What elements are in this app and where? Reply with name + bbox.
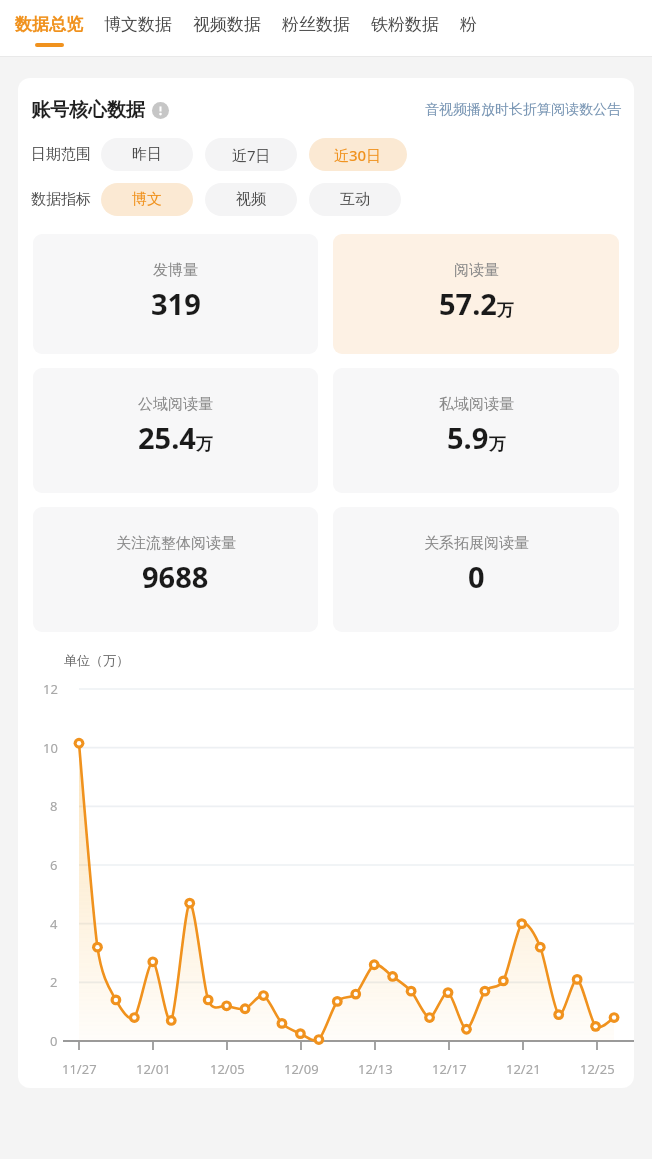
staticText: 音视频播放时长折算阅读数公告 <box>425 101 621 119</box>
button[interactable]: 关注流整体阅读量 <box>33 507 318 632</box>
button[interactable]: 发博量 <box>33 234 318 354</box>
button[interactable]: 视频数据 <box>193 0 261 56</box>
staticText: 关注流整体阅读量 <box>116 534 236 553</box>
button[interactable]: 关系拓展阅读量 <box>333 507 619 632</box>
staticText: 6 <box>50 856 58 874</box>
button[interactable]: 阅读量 <box>333 234 619 354</box>
staticText: 12/21 <box>506 1060 541 1078</box>
staticText: 公域阅读量 <box>138 395 213 414</box>
staticText: 12/09 <box>284 1060 319 1078</box>
staticText: 10 <box>43 739 58 757</box>
staticText: 12/13 <box>358 1060 393 1078</box>
button[interactable]: 近30日 <box>309 138 407 171</box>
staticText: 视频 <box>236 190 266 209</box>
staticText: 万 <box>489 434 506 455</box>
button[interactable]: 博文 <box>101 183 193 216</box>
staticText: 0 <box>468 557 485 596</box>
staticText: 视频数据 <box>193 14 261 35</box>
staticText: 博文数据 <box>104 14 172 35</box>
staticText: 57.2 <box>439 284 497 323</box>
staticText: 万 <box>497 300 514 321</box>
staticText: 发博量 <box>153 261 198 280</box>
staticText: 25.4 <box>138 418 196 457</box>
staticText: 昨日 <box>132 145 162 164</box>
staticText: 互动 <box>340 190 370 209</box>
button[interactable]: 说明 <box>151 101 169 119</box>
button[interactable]: 互动 <box>309 183 401 216</box>
staticText: 2 <box>50 973 58 991</box>
staticText: 4 <box>50 915 58 933</box>
button[interactable]: 博文数据 <box>104 0 172 56</box>
staticText: 9688 <box>142 557 209 596</box>
staticText: 铁粉数据 <box>371 14 439 35</box>
staticText: 319 <box>151 284 201 323</box>
button[interactable]: 视频 <box>205 183 297 216</box>
button[interactable]: 数据总览 <box>15 0 83 56</box>
button[interactable]: 粉 <box>460 0 477 56</box>
staticText: 近30日 <box>334 145 382 165</box>
button[interactable]: 粉丝数据 <box>282 0 350 56</box>
staticText: 12 <box>43 680 58 698</box>
button[interactable]: 私域阅读量 <box>333 368 619 493</box>
staticText: 12/25 <box>580 1060 615 1078</box>
staticText: 近7日 <box>232 145 271 165</box>
staticText: 私域阅读量 <box>439 395 514 414</box>
staticText: 12/05 <box>210 1060 245 1078</box>
staticText: 数据总览 <box>15 14 83 35</box>
staticText: 11/27 <box>62 1060 97 1078</box>
button[interactable]: 公域阅读量 <box>33 368 318 493</box>
staticText: 万 <box>196 434 213 455</box>
staticText: 5.9 <box>447 418 489 457</box>
staticText: 粉 <box>460 14 477 35</box>
staticText: 单位（万） <box>64 652 129 668</box>
button[interactable]: 音视频播放时长折算阅读数公告 <box>425 101 621 119</box>
staticText: 8 <box>50 797 58 815</box>
staticText: 粉丝数据 <box>282 14 350 35</box>
staticText: 账号核心数据 <box>31 98 145 122</box>
staticText: 博文 <box>132 190 162 209</box>
staticText: 关系拓展阅读量 <box>424 534 529 553</box>
staticText: 阅读量 <box>454 261 499 280</box>
button[interactable]: 近7日 <box>205 138 297 171</box>
staticText: 12/17 <box>432 1060 467 1078</box>
button[interactable]: 铁粉数据 <box>371 0 439 56</box>
staticText: 0 <box>50 1032 58 1050</box>
staticText: 数据指标 <box>31 190 91 209</box>
staticText: 日期范围 <box>31 145 91 164</box>
button[interactable]: 昨日 <box>101 138 193 171</box>
staticText: 12/01 <box>136 1060 171 1078</box>
